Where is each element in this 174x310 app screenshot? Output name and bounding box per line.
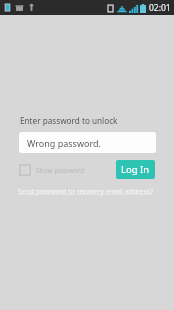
- button[interactable]: Send password to recovery email address?: [18, 186, 154, 197]
- staticText: Send password to recovery email address?: [18, 187, 154, 196]
- staticText: Log In: [121, 163, 150, 176]
- staticText: 02:01: [149, 2, 171, 14]
- button[interactable]: Log In: [116, 160, 155, 179]
- button[interactable]: Wrong password.: [19, 132, 156, 153]
- staticText: Show password: [36, 166, 85, 175]
- button[interactable]: Show password: [19, 162, 85, 178]
- staticText: Enter password to unlock: [20, 115, 118, 126]
- staticText: Wrong password.: [27, 137, 101, 149]
